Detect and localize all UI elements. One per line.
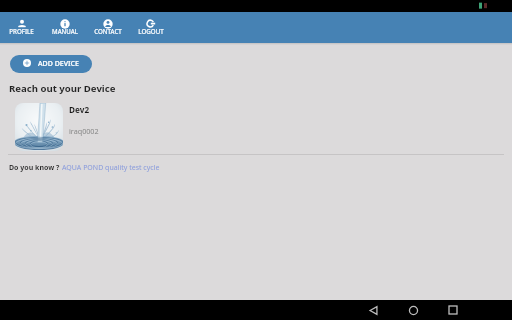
button[interactable]: Home [403, 300, 423, 320]
button[interactable]: PROFILE [0, 12, 43, 43]
button[interactable]: ADD DEVICE [10, 55, 92, 73]
staticText: MANUAL [52, 27, 78, 35]
button[interactable]: MANUAL [43, 12, 86, 43]
staticText: Do you know ? [9, 163, 62, 173]
staticText: ADD DEVICE [38, 59, 79, 69]
button[interactable]: Dev2 [0, 103, 512, 151]
button[interactable]: CONTACT [86, 12, 129, 43]
staticText: LOGOUT [138, 27, 164, 35]
staticText: CONTACT [94, 27, 122, 35]
button[interactable]: Recent apps [443, 300, 463, 320]
staticText: iraq0002 [69, 126, 99, 136]
button[interactable]: LOGOUT [129, 12, 172, 43]
button[interactable]: AQUA POND quality test cycle [62, 163, 160, 173]
staticText: Dev2 [69, 104, 90, 115]
staticText: PROFILE [9, 27, 34, 35]
staticText: Reach out your Device [9, 82, 116, 95]
button[interactable]: Back [363, 300, 383, 320]
